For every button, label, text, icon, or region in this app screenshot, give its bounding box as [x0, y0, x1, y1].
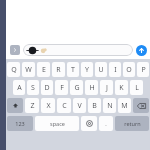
- button[interactable]: [23, 44, 133, 56]
- staticText: I: [114, 65, 117, 75]
- button[interactable]: space: [35, 116, 79, 131]
- staticText: A: [17, 83, 22, 93]
- button[interactable]: Y: [81, 62, 93, 77]
- button[interactable]: A: [13, 80, 25, 95]
- button[interactable]: E: [37, 62, 50, 77]
- staticText: T: [71, 65, 75, 75]
- staticText: C: [62, 101, 67, 111]
- staticText: E: [42, 65, 46, 75]
- staticText: D: [44, 83, 50, 93]
- staticText: W: [25, 65, 32, 75]
- staticText: X: [46, 101, 51, 111]
- button[interactable]: K: [115, 80, 128, 95]
- staticText: G: [74, 83, 80, 93]
- button[interactable]: S: [27, 80, 39, 95]
- button[interactable]: N: [103, 98, 116, 113]
- staticText: 123: [15, 120, 25, 127]
- button[interactable]: G: [70, 80, 83, 95]
- button[interactable]: O: [123, 62, 135, 77]
- staticText: S: [31, 83, 35, 93]
- button[interactable]: Backspace: [133, 98, 149, 113]
- button[interactable]: Shift: [7, 98, 23, 113]
- staticText: .: [105, 120, 107, 127]
- button[interactable]: X: [41, 98, 55, 113]
- button[interactable]: return: [115, 116, 149, 131]
- button[interactable]: M: [118, 98, 131, 113]
- button[interactable]: Show apps: [10, 45, 20, 55]
- staticText: B: [92, 101, 97, 111]
- button[interactable]: B: [88, 98, 101, 113]
- button[interactable]: V: [73, 98, 86, 113]
- staticText: return: [124, 120, 141, 127]
- button[interactable]: At sign: [81, 116, 97, 131]
- button[interactable]: .: [99, 116, 113, 131]
- staticText: N: [107, 101, 113, 111]
- staticText: L: [135, 83, 139, 93]
- button[interactable]: L: [130, 80, 143, 95]
- button[interactable]: T: [67, 62, 79, 77]
- staticText: H: [89, 83, 95, 93]
- button[interactable]: 123: [7, 116, 33, 131]
- staticText: R: [56, 65, 61, 75]
- staticText: Y: [85, 65, 89, 75]
- button[interactable]: Send: [136, 45, 147, 56]
- button[interactable]: R: [52, 62, 65, 77]
- staticText: V: [77, 101, 82, 111]
- staticText: M: [121, 101, 128, 111]
- staticText: K: [119, 83, 124, 93]
- staticText: Z: [30, 101, 35, 111]
- button[interactable]: P: [137, 62, 149, 77]
- button[interactable]: Q: [7, 62, 20, 77]
- staticText: space: [50, 120, 65, 127]
- button[interactable]: W: [22, 62, 35, 77]
- staticText: F: [60, 83, 64, 93]
- staticText: U: [98, 65, 104, 75]
- staticText: O: [126, 65, 132, 75]
- button[interactable]: U: [95, 62, 107, 77]
- staticText: J: [106, 83, 108, 93]
- staticText: Q: [11, 65, 17, 75]
- button[interactable]: D: [41, 80, 53, 95]
- button[interactable]: J: [100, 80, 113, 95]
- button[interactable]: I: [109, 62, 121, 77]
- button[interactable]: H: [85, 80, 98, 95]
- button[interactable]: Z: [25, 98, 39, 113]
- staticText: P: [141, 65, 146, 75]
- button[interactable]: F: [55, 80, 68, 95]
- button[interactable]: C: [57, 98, 71, 113]
